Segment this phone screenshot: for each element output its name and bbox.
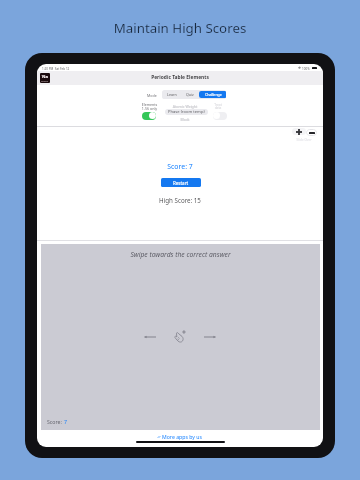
staticText: Atomic Weight <box>162 104 208 109</box>
staticText: Score: 7 <box>37 162 323 171</box>
staticText: Phase (room temp) <box>168 109 205 115</box>
button[interactable]: More options <box>306 129 317 136</box>
staticText: More apps by us <box>162 433 203 440</box>
button[interactable]: Restart <box>161 178 201 187</box>
staticText: Elements <box>139 102 160 107</box>
button[interactable]: Move window <box>292 128 306 135</box>
staticText: 100% <box>302 67 310 71</box>
staticText: Mode <box>147 93 157 98</box>
staticText: Periodic Table Elements <box>37 74 323 81</box>
button[interactable]: Phase (room temp) <box>165 109 208 115</box>
staticText: 7 <box>64 418 67 425</box>
staticText: Score: <box>47 418 64 425</box>
button[interactable]: Elements 1-56 only toggle <box>142 112 156 120</box>
staticText: Sodium <box>41 80 49 83</box>
staticText: Treat <box>208 103 228 107</box>
staticText: data <box>208 106 228 110</box>
button[interactable]: Learn <box>162 91 181 98</box>
staticText: 1:20 PM Sat Feb 12 <box>42 67 70 71</box>
staticText: High Score: 15 <box>37 196 323 204</box>
button[interactable]: Quiz <box>181 91 199 98</box>
staticText: 1-56 only <box>139 106 160 111</box>
staticText: Block <box>162 117 208 122</box>
staticText: Challenge <box>205 92 222 97</box>
staticText: Na <box>42 74 48 80</box>
staticText: Quiz <box>186 92 194 97</box>
button[interactable]: App icon <box>40 73 50 83</box>
button[interactable]: Challenge <box>199 91 226 98</box>
staticText: 11 <box>41 74 44 77</box>
button[interactable]: Secondary toggle <box>213 112 227 120</box>
staticText: Maintain High Scores <box>0 19 360 37</box>
staticText: Learn <box>167 92 177 97</box>
staticText: Swipe towards the correct answer <box>41 250 320 259</box>
button[interactable]: More apps by us <box>157 433 203 440</box>
staticText: Restart <box>173 180 189 186</box>
staticText: Slide Over <box>289 138 319 142</box>
